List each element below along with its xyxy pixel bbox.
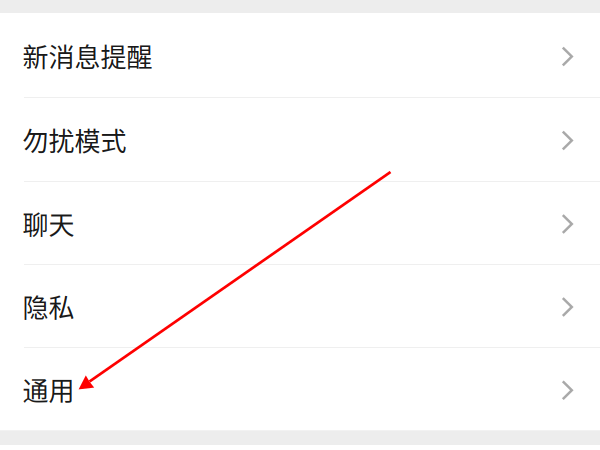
staticText: 勿扰模式 [22,121,126,158]
staticText: 新消息提醒 [22,37,152,74]
button[interactable]: 隐私 [0,264,600,347]
staticText: 通用 [22,371,74,408]
staticText: 聊天 [22,204,74,242]
button[interactable]: 勿扰模式 [0,97,600,181]
button[interactable]: 通用 [0,347,600,430]
button[interactable]: 聊天 [0,181,600,264]
button[interactable]: 新消息提醒 [0,13,600,97]
staticText: 隐私 [22,287,74,325]
